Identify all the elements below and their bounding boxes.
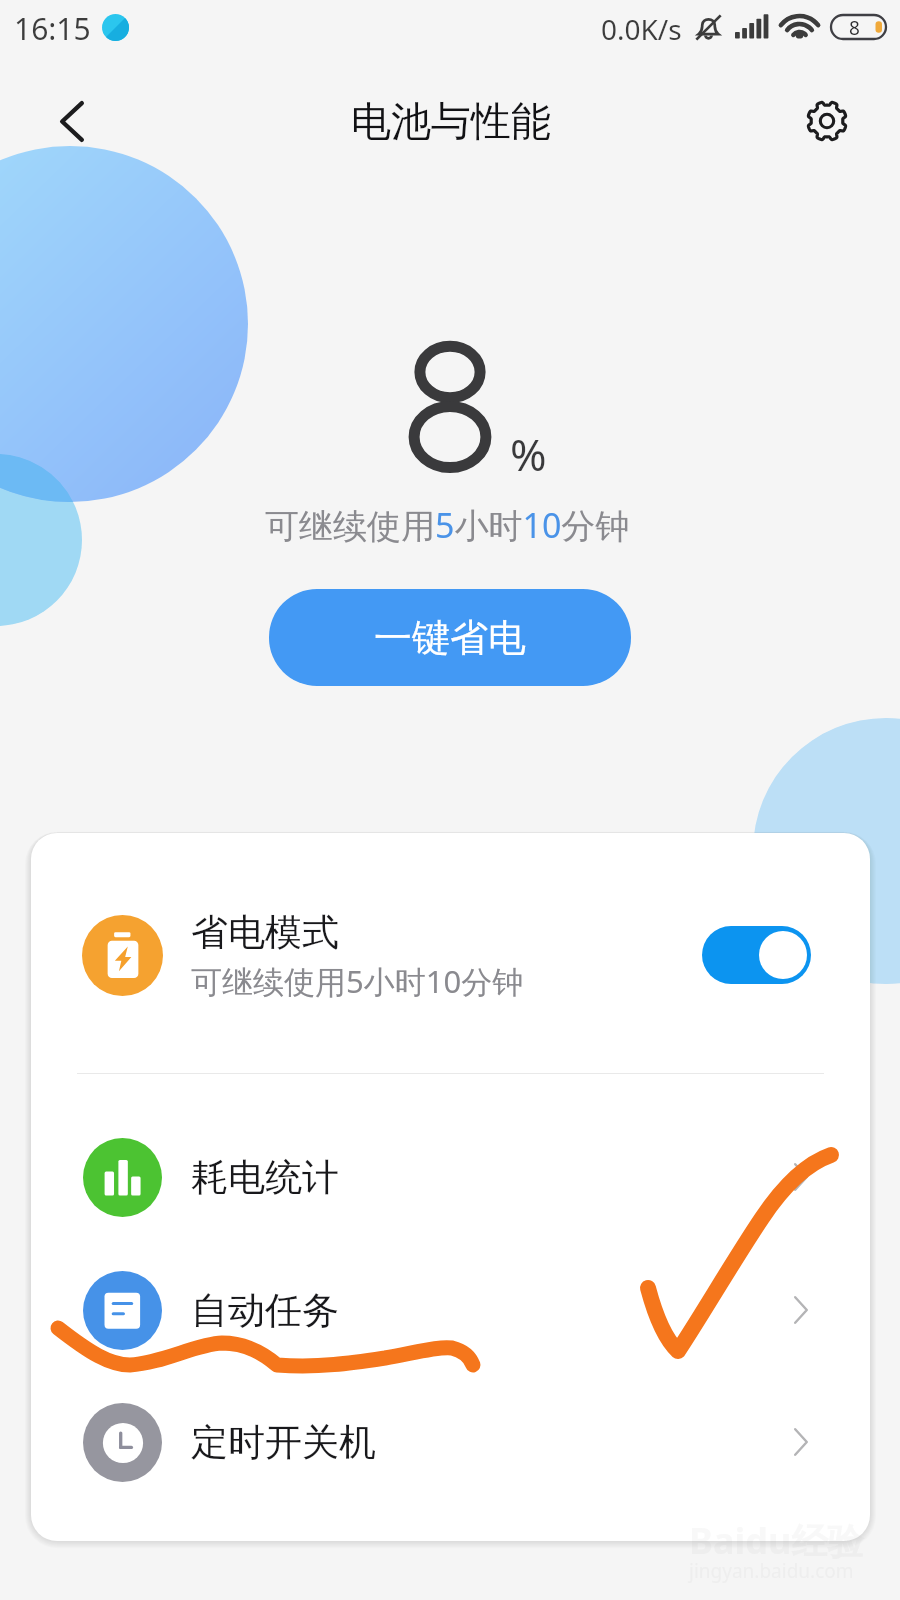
- button[interactable]: 定时开关机: [31, 1382, 870, 1502]
- button[interactable]: 耗电统计: [31, 1117, 870, 1237]
- staticText: 耗电统计: [191, 1154, 794, 1201]
- button[interactable]: 省电模式: [31, 878, 870, 1032]
- staticText: Baidu经验: [689, 1516, 864, 1565]
- button[interactable]: Power saving mode toggle: [702, 926, 811, 984]
- staticText: 8: [849, 15, 860, 39]
- button[interactable]: Back: [36, 85, 108, 157]
- staticText: 电池与性能: [351, 96, 551, 146]
- staticText: 可继续使用5小时10分钟: [265, 502, 630, 548]
- staticText: 0.0K/s: [601, 10, 682, 48]
- staticText: 16:15: [14, 8, 91, 49]
- staticText: 自动任务: [191, 1287, 794, 1334]
- button[interactable]: 自动任务: [31, 1250, 870, 1370]
- staticText: 省电模式: [191, 909, 339, 956]
- button[interactable]: Settings: [791, 85, 863, 157]
- button[interactable]: 一键省电: [269, 589, 631, 686]
- staticText: 定时开关机: [191, 1419, 794, 1466]
- staticText: 可继续使用5小时10分钟: [191, 960, 524, 1002]
- staticText: 一键省电: [374, 614, 526, 662]
- staticText: %: [510, 424, 547, 484]
